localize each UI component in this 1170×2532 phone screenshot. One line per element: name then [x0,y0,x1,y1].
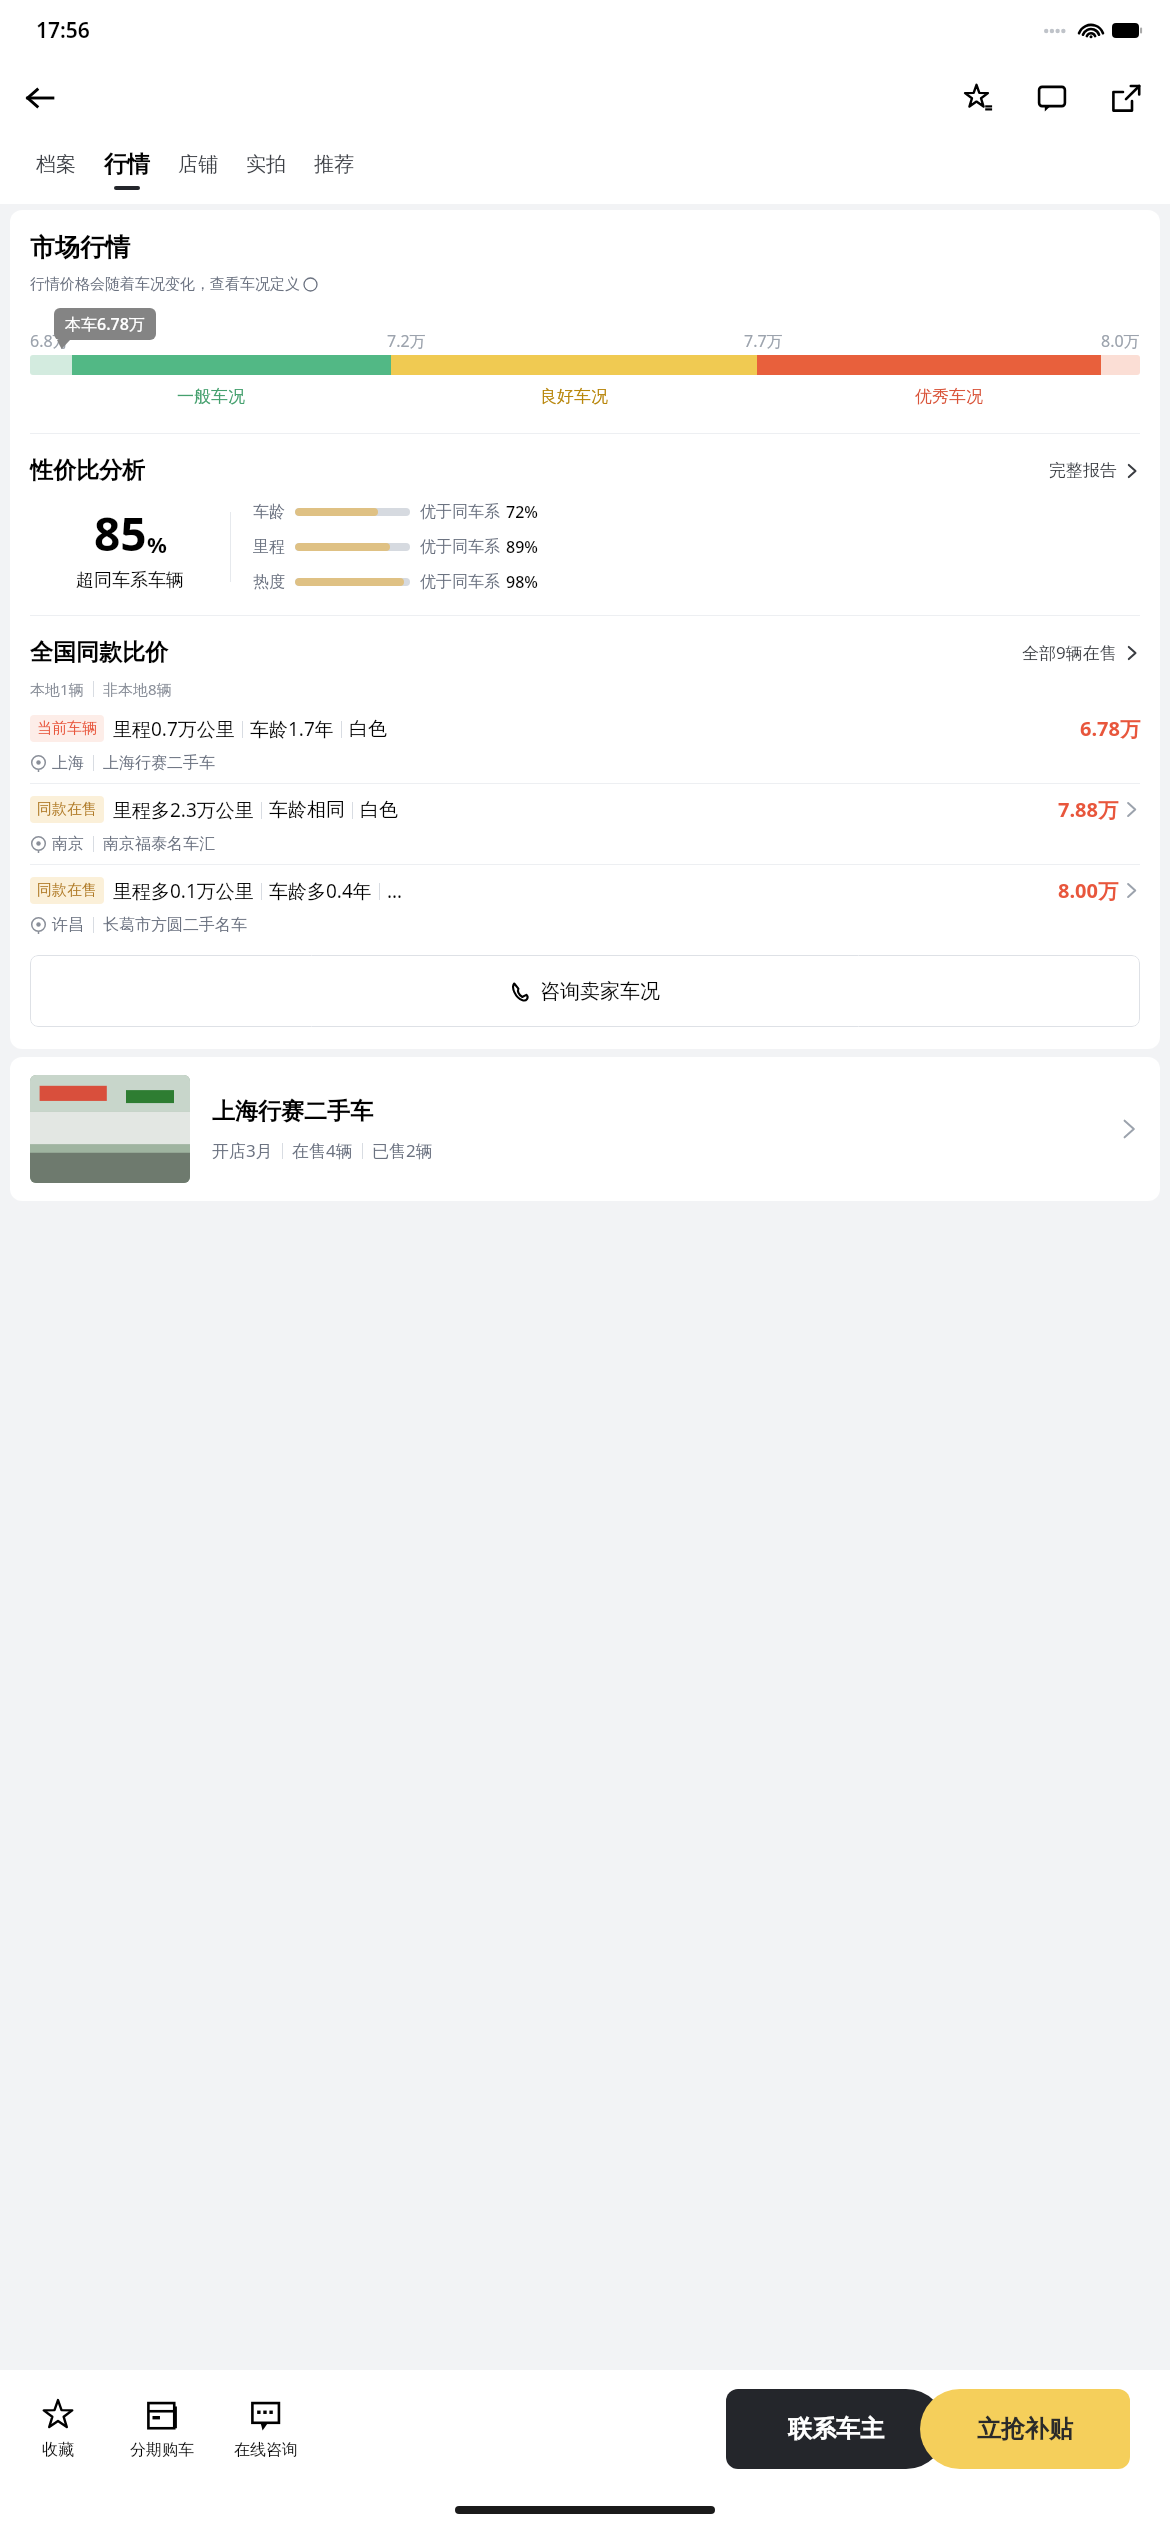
staticText: 7.7万 [744,330,783,352]
button[interactable]: 行情 [90,136,164,204]
button[interactable]: 咨询卖家车况 [30,955,1140,1027]
staticText: 优秀车况 [915,386,983,407]
staticText: 联系车主 [788,2414,884,2444]
button[interactable]: 行情价格会随着车况变化，查看车况定义 [30,275,318,294]
button[interactable]: Share [1102,74,1150,122]
button[interactable]: 同款在售 [30,796,1140,854]
button[interactable]: 上海行赛二手车 [10,1057,1160,1201]
staticText: 完整报告 [1049,460,1117,481]
staticText: 已售2辆 [372,1139,433,1162]
button[interactable]: 收藏 [6,2393,110,2466]
staticText: 店铺 [178,152,218,177]
staticText: 性价比分析 [30,456,145,485]
staticText: … [387,878,403,904]
staticText: 上海行赛二手车 [212,1097,373,1126]
staticText: 8.0万 [1101,330,1140,352]
staticText: 7.2万 [387,330,426,352]
button[interactable]: 档案 [22,136,90,204]
staticText: 17:56 [36,16,90,45]
button[interactable]: 完整报告 [1049,460,1140,481]
staticText: 上海行赛二手车 [103,753,215,773]
button[interactable]: Favorite [954,74,1002,122]
button[interactable]: 立抢补贴 [920,2389,1130,2469]
staticText: 南京福泰名车汇 [103,834,215,854]
staticText: 白色 [349,717,387,741]
staticText: 档案 [36,152,76,177]
staticText: 同款在售 [37,800,97,819]
staticText: 车龄 [253,502,285,522]
button[interactable]: 同款在售 [30,877,1140,935]
staticText: 良好车况 [540,386,608,407]
staticText: 7.88万 [1058,796,1118,823]
staticText: 89% [506,536,538,558]
staticText: % [147,529,167,559]
staticText: 优于同车系 [420,537,500,557]
staticText: 分期购车 [130,2440,194,2460]
staticText: 98% [506,571,538,593]
staticText: 实拍 [246,152,286,177]
staticText: 里程 [253,537,285,557]
staticText: 里程0.7万公里 [113,716,235,742]
staticText: 同款在售 [37,881,97,900]
button[interactable]: Back [14,72,66,124]
staticText: 咨询卖家车况 [540,979,660,1004]
staticText: 当前车辆 [37,719,97,738]
staticText: 非本地8辆 [103,679,172,699]
staticText: 上海 [52,753,84,773]
staticText: 本地1辆 [30,679,84,699]
button[interactable]: 推荐 [300,136,368,204]
staticText: 市场行情 [30,232,130,263]
staticText: 里程多2.3万公里 [113,797,254,823]
staticText: 在线咨询 [234,2440,298,2460]
staticText: 开店3月 [212,1139,273,1162]
staticText: 收藏 [42,2440,74,2460]
button[interactable]: 在线咨询 [214,2393,318,2466]
staticText: 全部9辆在售 [1022,641,1117,664]
staticText: 车龄相同 [269,798,345,822]
staticText: 优于同车系 [420,572,500,592]
staticText: 推荐 [314,152,354,177]
button[interactable]: 实拍 [232,136,300,204]
staticText: 长葛市方圆二手名车 [103,915,247,935]
staticText: 白色 [360,798,398,822]
button[interactable]: 当前车辆 [30,715,1140,773]
staticText: 全国同款比价 [30,638,168,667]
staticText: 72% [506,501,538,523]
staticText: 行情价格会随着车况变化，查看车况定义 [30,275,300,294]
staticText: 行情 [104,150,150,179]
button[interactable]: 店铺 [164,136,232,204]
staticText: 超同车系车辆 [76,569,184,592]
staticText: 车龄1.7年 [250,716,334,742]
button[interactable]: 全部9辆在售 [1022,641,1140,664]
staticText: 在售4辆 [292,1139,353,1162]
staticText: 车龄多0.4年 [269,878,372,904]
staticText: 6.8万 [30,330,69,352]
staticText: 南京 [52,834,84,854]
staticText: 里程多0.1万公里 [113,878,254,904]
button[interactable]: Comments [1028,74,1076,122]
button[interactable]: 联系车主 [726,2389,946,2469]
staticText: 85 [94,502,147,565]
staticText: 6.78万 [1080,715,1140,742]
staticText: 优于同车系 [420,502,500,522]
button[interactable]: 分期购车 [110,2393,214,2466]
staticText: 热度 [253,572,285,592]
staticText: 立抢补贴 [977,2414,1073,2444]
staticText: 许昌 [52,915,84,935]
staticText: 本车6.78万 [65,313,145,335]
staticText: 8.00万 [1058,877,1118,904]
staticText: 一般车况 [177,386,245,407]
